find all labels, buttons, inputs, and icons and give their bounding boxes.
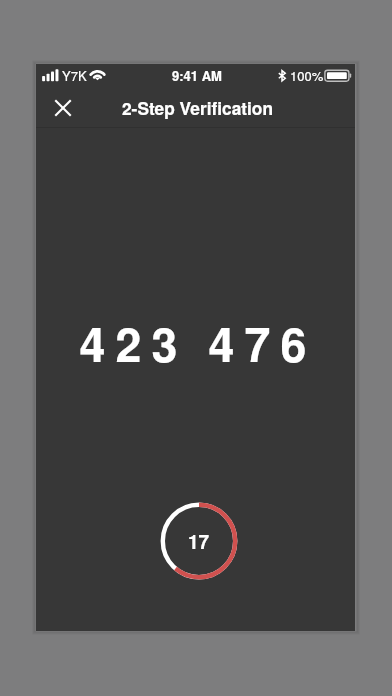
staticText: 9:41 AM xyxy=(172,66,222,85)
staticText: Y7K xyxy=(62,66,87,85)
staticText: 17 xyxy=(188,528,210,555)
button[interactable]: Code expires in 17 seconds xyxy=(160,502,238,580)
button[interactable]: Close xyxy=(45,88,81,128)
staticText: 100% xyxy=(290,66,324,85)
staticText: 2-Step Verification xyxy=(122,96,274,121)
staticText: 423 xyxy=(79,310,188,377)
staticText: 476 xyxy=(208,310,317,377)
